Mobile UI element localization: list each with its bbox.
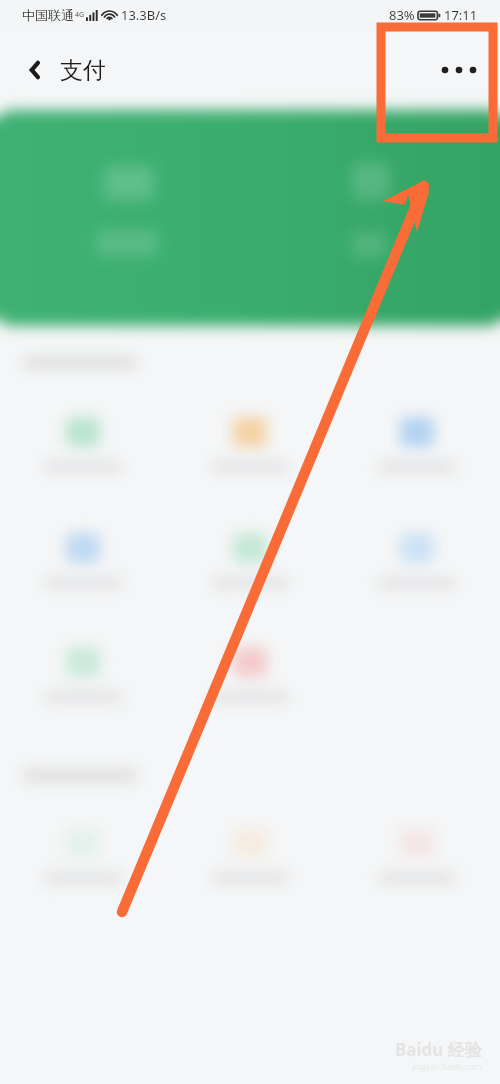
button[interactable] [212,533,288,589]
button[interactable] [212,417,288,473]
button[interactable] [212,647,288,703]
button[interactable] [379,533,455,589]
staticText: 4G [75,10,85,20]
staticText: 17:11 [444,6,478,24]
staticText: jingyan.baidu.com [412,1061,482,1072]
button[interactable] [379,417,455,473]
button[interactable] [45,533,121,589]
button[interactable] [0,110,500,326]
button[interactable] [45,828,121,884]
staticText: 13.3B/s [121,6,167,24]
staticText: 中国联通 [22,7,74,23]
button[interactable] [212,828,288,884]
button[interactable]: More options [428,39,490,101]
button[interactable] [45,417,121,473]
staticText: Baidu 经验 [395,1038,482,1061]
button[interactable] [45,647,121,703]
staticText: 83% [389,6,415,24]
button[interactable] [379,828,455,884]
button[interactable]: Back [14,48,58,92]
staticText: 支付 [60,56,106,85]
